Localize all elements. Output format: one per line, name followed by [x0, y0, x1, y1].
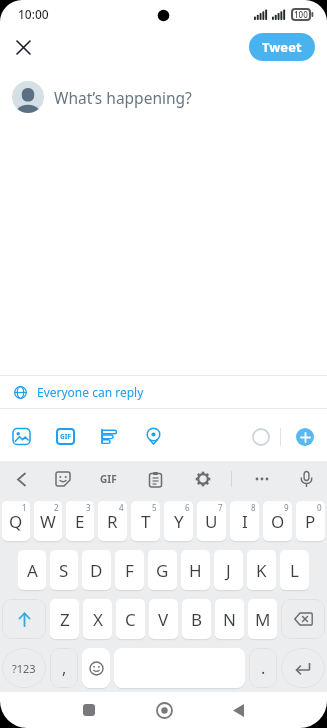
button[interactable]: Tweet: [249, 33, 315, 61]
button[interactable]: [191, 467, 215, 491]
button[interactable]: K: [247, 550, 276, 590]
staticText: O: [271, 510, 285, 533]
staticText: R: [107, 510, 118, 533]
button[interactable]: [74, 695, 104, 725]
button[interactable]: O: [263, 501, 292, 541]
button[interactable]: [296, 428, 314, 446]
staticText: C: [125, 608, 136, 631]
staticText: F: [125, 559, 134, 582]
staticText: 1: [22, 502, 27, 513]
button[interactable]: GIF: [96, 467, 120, 491]
staticText: P: [305, 510, 316, 533]
staticText: J: [226, 559, 231, 582]
staticText: .: [261, 657, 266, 679]
staticText: T: [141, 510, 151, 533]
button[interactable]: F: [115, 550, 144, 590]
button[interactable]: [100, 427, 119, 446]
staticText: Z: [60, 608, 70, 631]
staticText: 7: [218, 502, 223, 513]
staticText: 0: [317, 502, 322, 513]
button[interactable]: I: [230, 501, 259, 541]
button[interactable]: R: [98, 501, 127, 541]
button[interactable]: Y: [164, 501, 193, 541]
staticText: GIF: [100, 472, 117, 486]
staticText: W: [40, 510, 56, 533]
staticText: 5: [152, 502, 157, 513]
button[interactable]: D: [82, 550, 111, 590]
button[interactable]: E: [66, 501, 94, 541]
staticText: 9: [284, 502, 289, 513]
button[interactable]: N: [215, 599, 244, 639]
button[interactable]: [6, 30, 40, 64]
button[interactable]: V: [149, 599, 178, 639]
staticText: K: [256, 559, 267, 582]
button[interactable]: [281, 599, 325, 639]
staticText: H: [189, 559, 202, 582]
button[interactable]: S: [50, 550, 78, 590]
staticText: 8: [251, 502, 256, 513]
staticText: 4: [119, 502, 124, 513]
button[interactable]: Everyone can reply: [0, 376, 327, 408]
button[interactable]: [250, 467, 274, 491]
button[interactable]: U: [197, 501, 226, 541]
button[interactable]: .: [249, 648, 277, 688]
button[interactable]: [281, 648, 325, 688]
button[interactable]: [10, 468, 32, 490]
staticText: ?123: [12, 661, 36, 676]
button[interactable]: [51, 467, 75, 491]
staticText: N: [223, 608, 236, 631]
button[interactable]: [2, 599, 46, 639]
staticText: Y: [174, 510, 184, 533]
button[interactable]: ?123: [2, 648, 46, 688]
staticText: 2: [54, 502, 59, 513]
button[interactable]: [143, 467, 167, 491]
staticText: D: [90, 559, 103, 582]
button[interactable]: P: [296, 501, 325, 541]
staticText: Tweet: [262, 38, 302, 56]
button[interactable]: T: [131, 501, 160, 541]
staticText: I: [242, 510, 248, 533]
button[interactable]: [295, 468, 317, 490]
staticText: Q: [9, 510, 23, 533]
staticText: U: [205, 510, 218, 533]
staticText: X: [93, 608, 103, 631]
staticText: 100: [294, 9, 308, 20]
staticText: 3: [86, 502, 91, 513]
button[interactable]: GIF: [56, 427, 75, 446]
button[interactable]: B: [182, 599, 211, 639]
staticText: G: [156, 559, 169, 582]
staticText: Everyone can reply: [37, 384, 144, 400]
button[interactable]: A: [18, 550, 46, 590]
button[interactable]: [149, 695, 179, 725]
button[interactable]: Q: [2, 501, 30, 541]
staticText: ,: [62, 657, 67, 679]
staticText: S: [59, 559, 69, 582]
staticText: L: [290, 559, 299, 582]
button[interactable]: H: [181, 550, 210, 590]
button[interactable]: Z: [50, 599, 79, 639]
button[interactable]: G: [148, 550, 177, 590]
button[interactable]: J: [214, 550, 243, 590]
staticText: 10:00: [18, 6, 49, 22]
staticText: What’s happening?: [54, 87, 192, 108]
button[interactable]: X: [83, 599, 112, 639]
button[interactable]: [144, 427, 163, 446]
staticText: M: [255, 608, 271, 631]
staticText: GIF: [60, 432, 71, 441]
button[interactable]: ,: [50, 648, 78, 688]
button[interactable]: [12, 427, 31, 446]
staticText: B: [191, 608, 203, 631]
staticText: V: [158, 608, 169, 631]
button[interactable]: [82, 648, 110, 688]
button[interactable]: W: [34, 501, 62, 541]
button[interactable]: L: [280, 550, 309, 590]
staticText: 6: [185, 502, 190, 513]
button[interactable]: M: [248, 599, 277, 639]
button[interactable]: C: [116, 599, 145, 639]
staticText: A: [27, 559, 38, 582]
button[interactable]: [223, 695, 253, 725]
staticText: E: [75, 510, 85, 533]
